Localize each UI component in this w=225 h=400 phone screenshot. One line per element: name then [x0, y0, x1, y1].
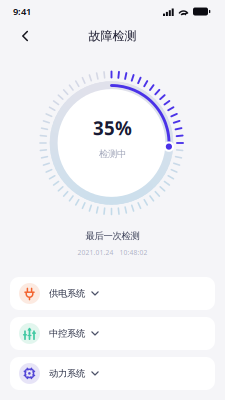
staticText: 中控系统 — [49, 328, 85, 339]
staticText: 故障检测 — [88, 29, 136, 43]
staticText: 9:41 — [13, 5, 31, 18]
button[interactable]: 供电系统 — [10, 277, 215, 310]
button[interactable]: 动力系统 — [10, 357, 215, 390]
staticText: 动力系统 — [49, 368, 85, 379]
button[interactable]: 中控系统 — [10, 317, 215, 350]
staticText: 检测中 — [99, 148, 126, 160]
staticText: 35% — [93, 116, 132, 140]
staticText: 供电系统 — [49, 288, 85, 299]
button[interactable]: Back — [0, 24, 42, 48]
staticText: 2021.01.24 10:48:02 — [77, 248, 147, 257]
staticText: 最后一次检测 — [85, 230, 139, 242]
